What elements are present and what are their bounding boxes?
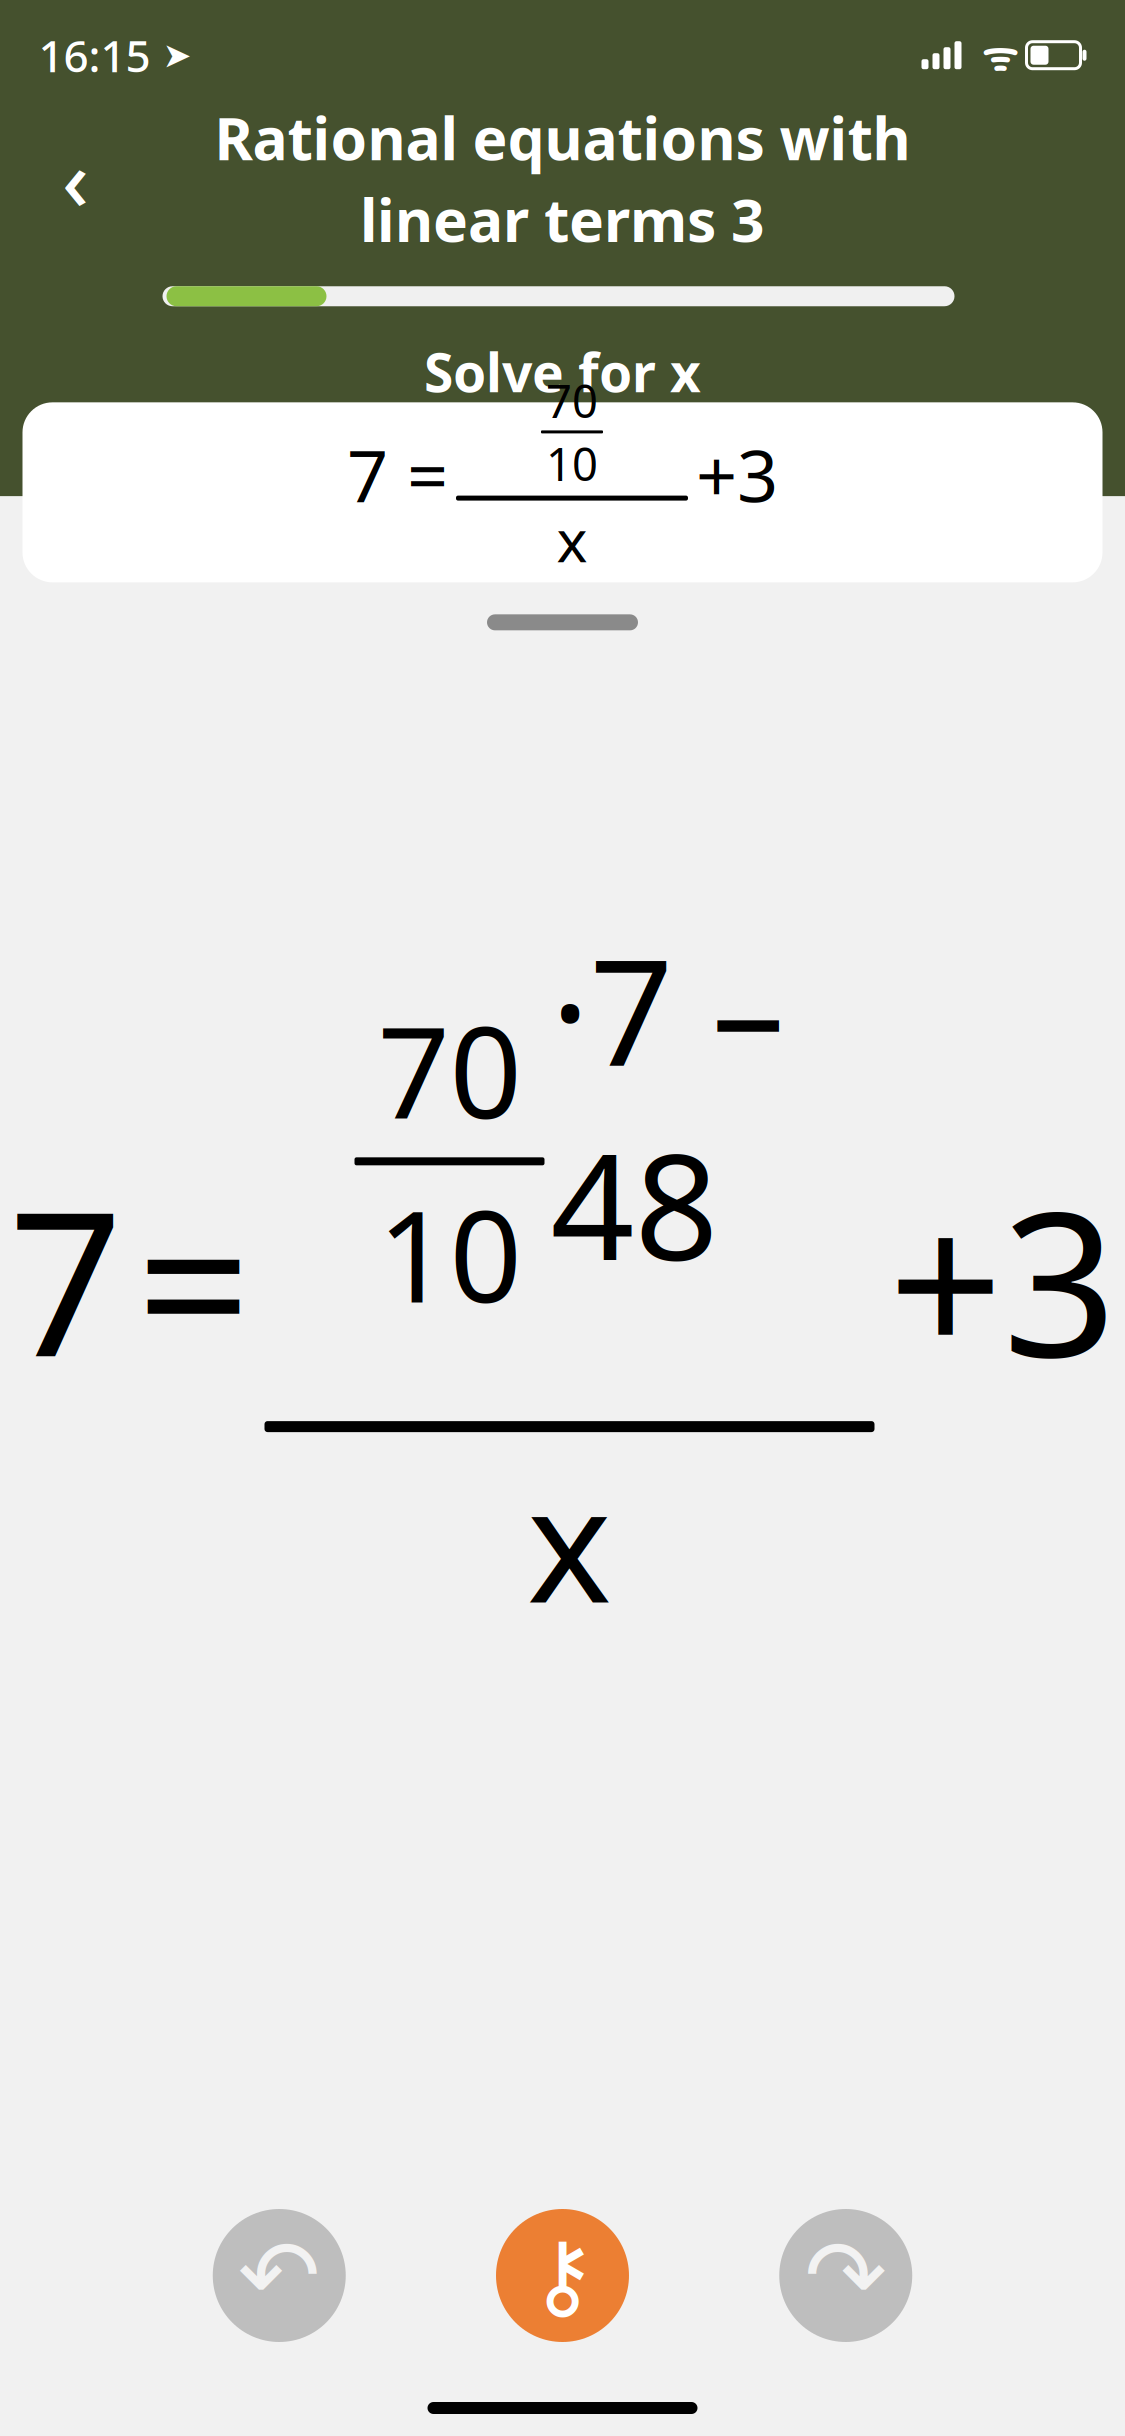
button[interactable]: Back: [20, 123, 130, 233]
staticText: =: [136, 1146, 250, 1412]
staticText: 16:15: [38, 26, 150, 84]
button[interactable]: Undo: [213, 2209, 346, 2342]
staticText: ‹: [62, 123, 89, 233]
staticText: 70: [377, 985, 521, 1153]
staticText: ·7 – 48: [550, 912, 784, 1301]
staticText: +3: [888, 1146, 1116, 1412]
staticText: ⚷: [528, 2222, 596, 2328]
staticText: +3: [696, 426, 778, 522]
staticText: 7 =: [347, 426, 448, 522]
staticText: 7: [8, 1146, 122, 1412]
staticText: ↷: [804, 2219, 887, 2331]
staticText: 10: [546, 433, 598, 494]
staticText: 70: [546, 370, 598, 430]
staticText: Solve for x: [424, 336, 701, 407]
staticText: Rational equations with: [214, 98, 910, 176]
staticText: ᯤ: [961, 29, 1018, 82]
staticText: x: [527, 1434, 612, 1647]
staticText: ↶: [238, 2219, 321, 2331]
staticText: Step 0 of 10: [422, 411, 702, 478]
staticText: ➤: [150, 35, 191, 75]
staticText: linear terms 3: [360, 180, 765, 258]
button[interactable]: Show answer key: [496, 2209, 629, 2342]
staticText: x: [556, 501, 587, 578]
staticText: 10: [377, 1169, 521, 1337]
button[interactable]: Redo: [779, 2209, 912, 2342]
